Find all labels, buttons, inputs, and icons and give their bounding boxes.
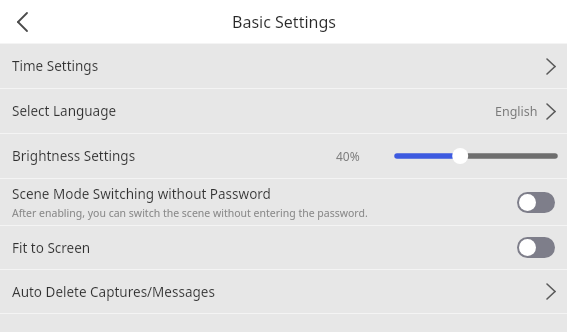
- button[interactable]: Toggle: [517, 192, 555, 213]
- button[interactable]: Brightness slider: [397, 145, 555, 167]
- button[interactable]: Auto Delete Captures/Messages: [0, 270, 567, 313]
- staticText: Select Language: [12, 102, 117, 120]
- staticText: Scene Mode Switching without Password: [12, 185, 271, 203]
- button[interactable]: Back: [0, 0, 44, 43]
- staticText: 40%: [336, 148, 360, 164]
- staticText: Fit to Screen: [12, 239, 91, 257]
- button[interactable]: Toggle: [517, 237, 555, 258]
- button[interactable]: Scene Mode Switching without Password: [0, 179, 567, 225]
- staticText: Auto Delete Captures/Messages: [12, 283, 215, 301]
- button[interactable]: Brightness Settings: [0, 134, 567, 178]
- button[interactable]: Time Settings: [0, 44, 567, 88]
- button[interactable]: Select Language: [0, 89, 567, 133]
- staticText: Time Settings: [12, 57, 99, 75]
- staticText: After enabling, you can switch the scene…: [12, 206, 368, 220]
- staticText: Brightness Settings: [12, 147, 136, 165]
- button[interactable]: Fit to Screen: [0, 226, 567, 269]
- staticText: Basic Settings: [232, 11, 336, 33]
- staticText: English: [495, 103, 538, 120]
